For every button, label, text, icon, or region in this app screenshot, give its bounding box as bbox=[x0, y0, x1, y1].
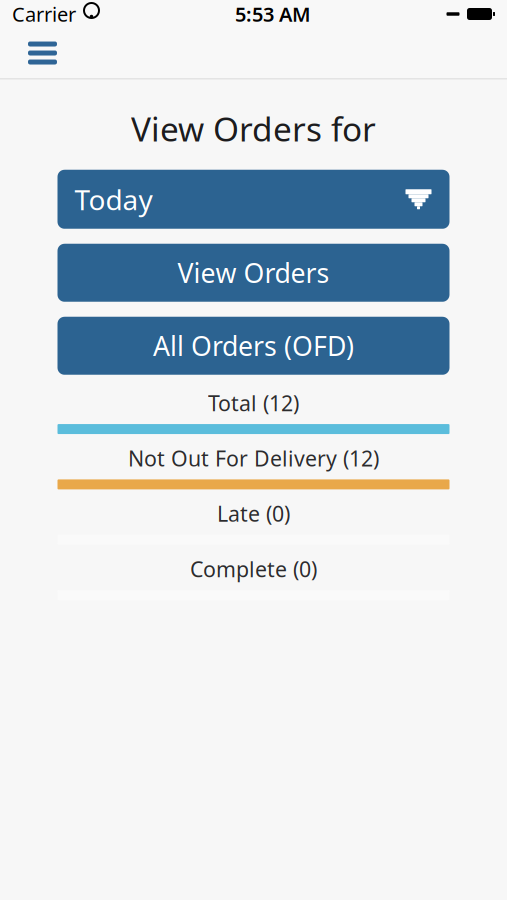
staticText: Total (12) bbox=[208, 389, 299, 417]
button[interactable]: Menu bbox=[14, 30, 71, 75]
staticText: Not Out For Delivery (12) bbox=[128, 444, 379, 472]
button[interactable]: View Orders bbox=[57, 244, 449, 302]
staticText: Carrier bbox=[12, 1, 76, 27]
staticText: Late (0) bbox=[217, 499, 290, 528]
staticText: Complete (0) bbox=[190, 555, 317, 583]
staticText: 5:53 AM bbox=[235, 1, 311, 27]
staticText: All Orders (OFD) bbox=[153, 328, 354, 363]
button[interactable]: All Orders (OFD) bbox=[57, 317, 449, 375]
staticText: Today bbox=[74, 181, 152, 218]
staticText: View Orders bbox=[177, 255, 329, 290]
staticText: View Orders for bbox=[131, 106, 376, 151]
button[interactable]: Today bbox=[57, 170, 449, 229]
